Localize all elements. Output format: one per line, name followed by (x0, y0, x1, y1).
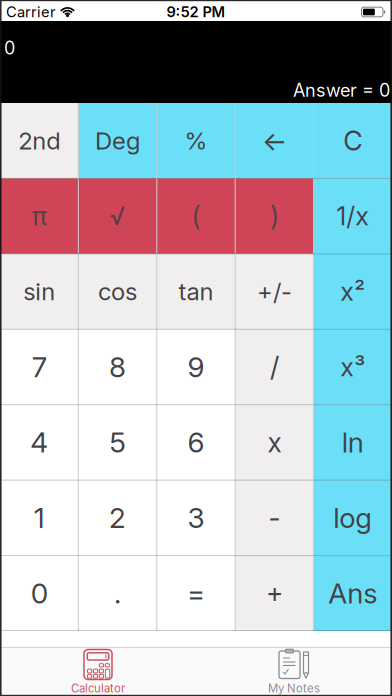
staticText: 1 (34, 501, 45, 535)
button[interactable]: / (235, 329, 314, 405)
button[interactable]: ) (235, 178, 314, 254)
button[interactable]: tan (157, 254, 235, 329)
staticText: ) (270, 200, 279, 232)
button[interactable]: 2nd (0, 103, 78, 178)
button[interactable]: π (0, 178, 78, 254)
button[interactable]: 2 (78, 480, 157, 555)
staticText: ← (262, 125, 287, 157)
button[interactable]: +/- (235, 254, 314, 329)
button[interactable]: 1 (0, 480, 78, 555)
staticText: Answer = 0 (293, 79, 390, 101)
staticText: sin (23, 277, 55, 306)
staticText: 6 (187, 425, 204, 459)
staticText: log (333, 501, 372, 535)
staticText: C (343, 125, 362, 157)
staticText: Ans (328, 576, 377, 610)
button[interactable]: 7 (0, 329, 78, 405)
staticText: π (32, 201, 47, 231)
staticText: = (187, 576, 205, 610)
button[interactable]: 5 (78, 405, 157, 480)
button[interactable]: Deg (78, 103, 157, 178)
button[interactable]: 4 (0, 405, 78, 480)
button[interactable]: My Notes (196, 648, 392, 696)
staticText: 9:52 PM (166, 3, 225, 21)
button[interactable]: 0 (0, 556, 78, 631)
button[interactable]: log (314, 480, 392, 555)
button[interactable]: 6 (157, 405, 235, 480)
button[interactable]: sin (0, 254, 78, 329)
staticText: + (266, 577, 283, 609)
staticText: Carrier (6, 3, 56, 21)
staticText: 1/x (336, 201, 369, 231)
staticText: cos (98, 277, 137, 306)
button[interactable]: 8 (78, 329, 157, 405)
button[interactable]: = (157, 556, 235, 631)
staticText: Calculator (71, 681, 125, 695)
staticText: Deg (95, 126, 140, 155)
staticText: x³ (340, 352, 365, 382)
staticText: x² (340, 276, 365, 307)
staticText: 2 (109, 501, 126, 535)
staticText: 7 (32, 350, 47, 384)
staticText: x (267, 426, 281, 459)
button[interactable]: ln (314, 405, 392, 480)
button[interactable]: √ (78, 178, 157, 254)
staticText: +/- (257, 277, 292, 306)
button[interactable]: Calculator (0, 648, 196, 696)
staticText: 3 (187, 501, 204, 535)
staticText: 2nd (18, 126, 60, 155)
button[interactable]: 1/x (314, 178, 392, 254)
staticText: % (184, 126, 207, 155)
staticText: ln (342, 425, 364, 459)
button[interactable]: Ans (314, 556, 392, 631)
staticText: / (270, 351, 279, 383)
button[interactable]: x (235, 405, 314, 480)
button[interactable]: - (235, 480, 314, 555)
button[interactable]: x³ (314, 329, 392, 405)
button[interactable]: . (78, 556, 157, 631)
staticText: tan (178, 277, 213, 306)
staticText: - (268, 502, 280, 534)
staticText: . (114, 576, 121, 610)
button[interactable]: cos (78, 254, 157, 329)
button[interactable]: ( (157, 178, 235, 254)
button[interactable]: % (157, 103, 235, 178)
button[interactable]: + (235, 556, 314, 631)
staticText: 9 (187, 350, 204, 384)
staticText: 0 (31, 576, 48, 610)
staticText: My Notes (268, 681, 320, 695)
button[interactable]: Backspace (235, 103, 314, 178)
button[interactable]: x² (314, 254, 392, 329)
staticText: 4 (30, 425, 48, 459)
staticText: 8 (109, 350, 126, 384)
button[interactable]: C (314, 103, 392, 178)
staticText: √ (110, 201, 126, 231)
staticText: ( (191, 200, 200, 232)
button[interactable]: 3 (157, 480, 235, 555)
button[interactable]: 9 (157, 329, 235, 405)
staticText: 0 (4, 37, 15, 59)
staticText: 5 (110, 425, 126, 459)
